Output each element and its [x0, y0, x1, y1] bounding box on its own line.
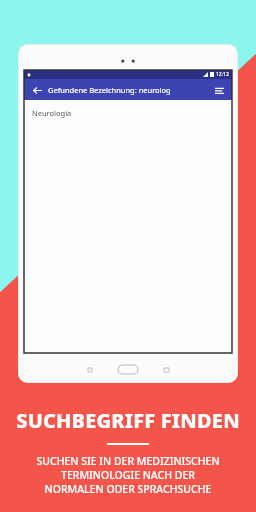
- button[interactable]: Neurología: [32, 108, 232, 118]
- staticText: Neurología: [32, 108, 72, 118]
- staticText: SUCHEN SIE IN DER MEDIZINISCHEN TERMINOL…: [36, 454, 220, 496]
- staticText: SUCHBEGRIFF FINDEN: [16, 407, 240, 434]
- button[interactable]: Menu: [212, 83, 226, 97]
- staticText: 12:12: [216, 71, 229, 78]
- staticText: Gefundene Bezeichnung: neurolog: [48, 85, 171, 95]
- button[interactable]: Back: [30, 83, 44, 97]
